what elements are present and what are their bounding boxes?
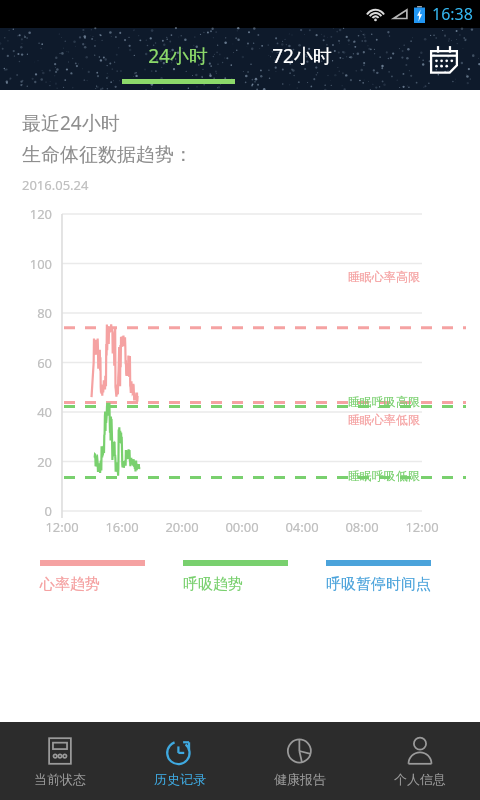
staticText: 120 [14,205,52,223]
staticText: 呼吸趋势 [183,575,243,594]
staticText: 呼吸暂停时间点 [326,575,431,594]
staticText: 最近24小时 [22,110,120,136]
staticText: 40 [14,403,52,421]
staticText: 睡眠心率高限 [348,269,420,284]
staticText: 16:38 [432,3,473,25]
staticText: 100 [14,255,52,273]
button[interactable]: 呼吸暂停时间点 [326,560,431,594]
button[interactable]: 健康报告 [240,722,360,800]
staticText: 08:00 [336,518,388,536]
staticText: 心率趋势 [40,575,100,594]
staticText: 睡眠呼吸高限 [348,394,420,409]
staticText: 04:00 [276,518,328,536]
staticText: 历史记录 [154,771,206,787]
staticText: 个人信息 [394,771,446,787]
button[interactable]: 72小时 [244,28,360,90]
button[interactable]: 历史记录 [120,722,240,800]
staticText: 睡眠呼吸低限 [348,468,420,483]
staticText: 24小时 [148,43,208,69]
staticText: 0 [14,502,52,520]
staticText: 16:00 [96,518,148,536]
staticText: 00:00 [216,518,268,536]
button[interactable]: Calendar [422,37,466,81]
button[interactable]: 个人信息 [360,722,480,800]
button[interactable]: 心率趋势 [40,560,145,594]
staticText: 60 [14,354,52,372]
staticText: 生命体征数据趋势： [22,143,193,167]
staticText: 12:00 [36,518,88,536]
staticText: 80 [14,304,52,322]
staticText: 睡眠心率低限 [348,412,420,427]
staticText: 72小时 [272,43,332,69]
button[interactable]: 24小时 [120,28,236,90]
staticText: 20 [14,453,52,471]
staticText: 2016.05.24 [22,176,89,194]
staticText: 健康报告 [274,771,326,787]
staticText: 20:00 [156,518,208,536]
button[interactable]: 当前状态 [0,722,120,800]
staticText: 当前状态 [34,771,86,787]
staticText: 12:00 [396,518,448,536]
button[interactable]: 呼吸趋势 [183,560,288,594]
